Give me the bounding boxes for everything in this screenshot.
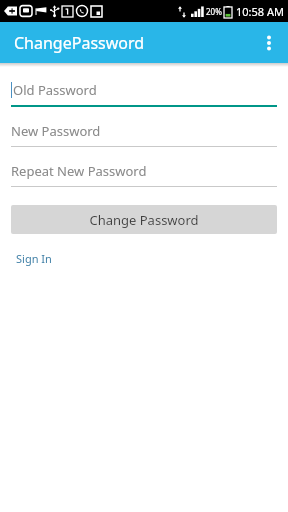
button[interactable]: Sign In: [16, 251, 52, 266]
staticText: Old Password: [13, 81, 97, 99]
button[interactable]: Change Password: [11, 205, 277, 234]
button[interactable]: More options: [250, 24, 288, 62]
staticText: Repeat New Password: [11, 162, 147, 180]
staticText: Sign In: [16, 251, 52, 266]
staticText: 10:58 AM: [236, 4, 284, 19]
staticText: Change Password: [89, 211, 199, 229]
button[interactable]: New Password: [11, 122, 277, 147]
staticText: 20%: [206, 6, 222, 17]
staticText: New Password: [11, 122, 101, 140]
button[interactable]: Repeat New Password: [11, 162, 277, 187]
staticText: ChangePassword: [14, 32, 145, 54]
button[interactable]: Old Password: [11, 81, 277, 107]
